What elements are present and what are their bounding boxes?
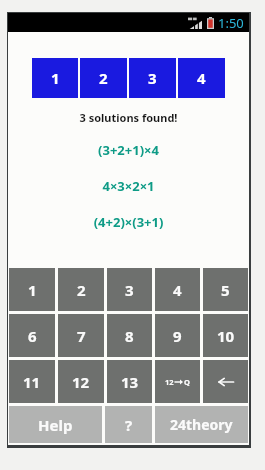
staticText: 1 [51,68,60,88]
button[interactable]: 12 [58,360,104,403]
button[interactable]: 13 [107,360,152,403]
staticText: 12 [165,377,174,387]
button[interactable]: 4 [155,268,200,311]
staticText: 24theory [170,415,233,434]
staticText: 11 [23,372,41,392]
staticText: (4+2)×(3+1) [8,213,249,231]
button[interactable]: 3 [129,58,176,98]
button[interactable]: 7 [58,314,104,357]
staticText: 2 [77,280,86,300]
staticText: 8 [125,326,134,346]
staticText: 3 [148,68,157,88]
staticText: 12 [72,372,90,392]
staticText: 4 [173,280,182,300]
staticText: 13 [121,372,139,392]
staticText: 7 [77,326,86,346]
staticText: 6 [28,326,37,346]
button[interactable]: 6 [9,314,55,357]
button[interactable]: Help [9,406,102,443]
staticText: Help [38,415,73,435]
staticText: 2 [99,68,108,88]
staticText: 9 [173,326,182,346]
button[interactable]: 1 [32,58,78,98]
button[interactable]: 5 [203,268,248,311]
button[interactable]: 11 [9,360,55,403]
staticText: ? [125,415,133,435]
staticText: 3 [125,280,134,300]
button[interactable]: 24theory [155,406,248,443]
button[interactable]: 1 [9,268,55,311]
button[interactable]: Backspace [203,360,248,403]
button[interactable]: 4 [178,58,225,98]
staticText: 4×3×2×1 [8,177,249,195]
button[interactable]: 2 [58,268,104,311]
staticText: 3 solutions found! [8,110,249,125]
staticText: 1:50 [218,14,244,32]
staticText: 5 [221,280,230,300]
button[interactable]: Switch 12 to Q [155,360,200,403]
staticText: Q [184,377,190,387]
button[interactable]: 3 [107,268,152,311]
staticText: 10 [217,326,235,346]
button[interactable]: 9 [155,314,200,357]
button[interactable]: 2 [80,58,127,98]
button[interactable]: 8 [107,314,152,357]
staticText: 1 [28,280,37,300]
button[interactable]: ? [105,406,152,443]
staticText: (3+2+1)×4 [8,141,249,159]
staticText: 4 [197,68,206,88]
button[interactable]: 10 [203,314,248,357]
